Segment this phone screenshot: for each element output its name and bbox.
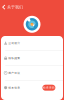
button[interactable]: 公司简介: [1, 36, 63, 50]
staticText: 公司简介: [8, 41, 20, 45]
button[interactable]: 用户协议: [1, 66, 63, 80]
button[interactable]: 版本信息: [1, 80, 63, 95]
staticText: 版本信息: [8, 86, 20, 90]
staticText: 关于我们: [7, 5, 23, 9]
button[interactable]: 关于我们: [0, 3, 64, 11]
staticText: 检查更新: [43, 86, 55, 89]
button[interactable]: 隐私政策: [1, 51, 63, 65]
button[interactable]: 检查更新: [42, 85, 55, 91]
staticText: 隐私政策: [8, 56, 20, 60]
staticText: 用户协议: [8, 71, 20, 75]
